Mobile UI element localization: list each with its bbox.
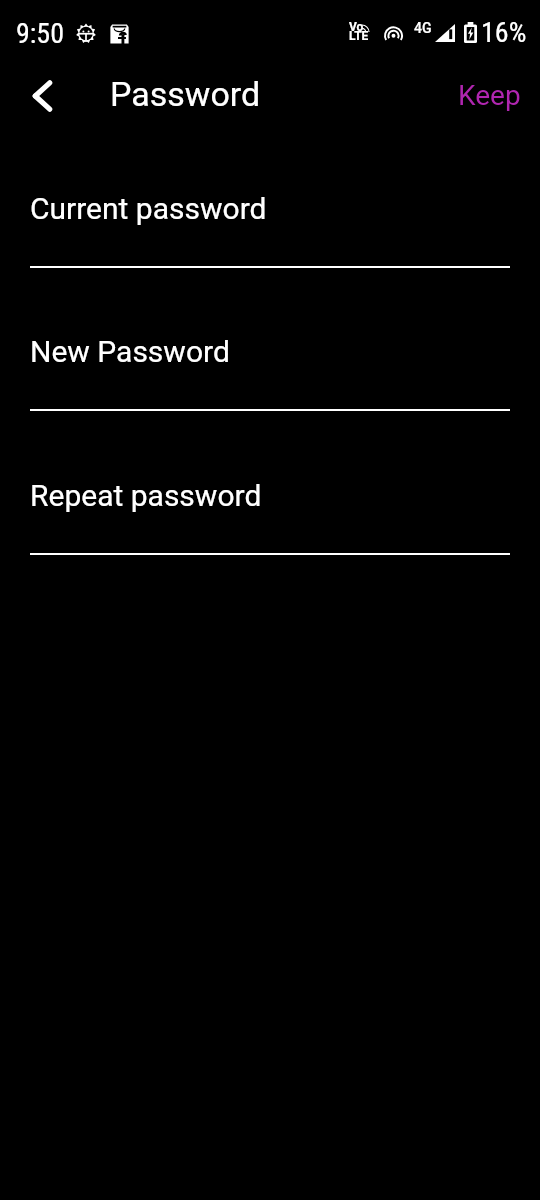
button[interactable]: Current password (0, 173, 540, 282)
staticText: Keep (458, 79, 521, 112)
staticText: Repeat password (30, 478, 262, 513)
staticText: Current password (30, 191, 267, 226)
staticText: 16% (481, 16, 527, 49)
button[interactable]: New Password (0, 316, 540, 425)
button[interactable]: Keep (436, 66, 540, 127)
staticText: 4G (414, 20, 432, 36)
staticText: Password (110, 74, 261, 114)
button[interactable]: Navigate up (18, 72, 66, 120)
staticText: 9:50 (16, 17, 65, 50)
staticText: New Password (30, 334, 230, 369)
staticText: Vo (349, 20, 364, 34)
staticText: LTE (349, 29, 369, 43)
button[interactable]: Repeat password (0, 460, 540, 569)
